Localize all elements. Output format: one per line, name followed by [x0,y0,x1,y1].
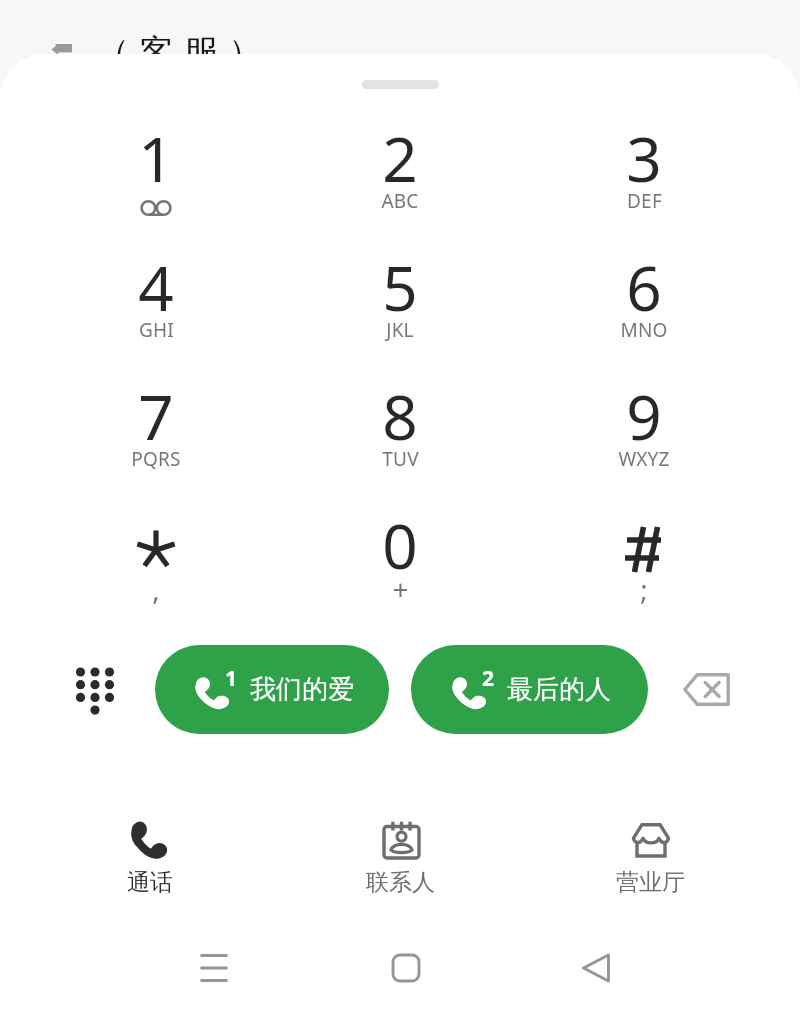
button[interactable]: Back [558,930,634,1006]
button[interactable]: Delete [678,666,734,712]
staticText: 营业厅 [616,868,685,897]
button[interactable]: 5 [328,241,472,365]
button[interactable]: 1 [155,645,389,734]
staticText: 2 [482,664,495,693]
button[interactable]: 2 [411,645,648,734]
staticText: 4 [138,245,174,329]
staticText: 1 [225,664,238,693]
staticText: DEF [627,188,662,214]
staticText: 我们的爱 [250,673,354,706]
staticText: 7 [138,374,174,458]
staticText: WXYZ [618,446,670,472]
staticText: MNO [620,317,668,343]
staticText: 2 [382,116,418,200]
staticText: ABC [381,188,419,214]
staticText: + [392,570,409,608]
staticText: 最后的人 [507,673,611,706]
button[interactable]: 通话 [88,804,212,908]
staticText: 9 [626,374,662,458]
button[interactable]: 4 [84,241,228,365]
button[interactable]: , [84,499,228,623]
staticText: 5 [382,245,418,329]
button[interactable]: 联系人 [338,804,462,908]
staticText: PQRS [131,446,181,472]
button[interactable]: 0 [328,499,472,623]
staticText: 通话 [127,868,173,897]
button[interactable]: 2 [328,112,472,236]
button[interactable]: 9 [572,370,716,494]
button[interactable]: 6 [572,241,716,365]
staticText: 3 [626,116,662,200]
button[interactable]: Recents [176,930,252,1006]
staticText: 6 [626,245,662,329]
staticText: 0 [382,503,418,587]
staticText: ; [640,570,648,608]
staticText: JKL [386,317,414,343]
button[interactable]: 8 [328,370,472,494]
staticText: TUV [382,446,419,472]
staticText: 1 [138,116,174,200]
button[interactable]: ; [572,499,716,623]
staticText: 8 [382,374,418,458]
staticText: 联系人 [366,868,435,897]
button[interactable]: 7 [84,370,228,494]
button[interactable]: 营业厅 [588,804,712,908]
button[interactable]: Home [368,930,444,1006]
staticText: , [152,570,160,608]
button[interactable]: Keypad [61,657,129,725]
staticText: （客服） [90,30,268,54]
button[interactable]: 3 [572,112,716,236]
staticText: GHI [139,317,174,343]
button[interactable]: 1 [84,112,228,236]
